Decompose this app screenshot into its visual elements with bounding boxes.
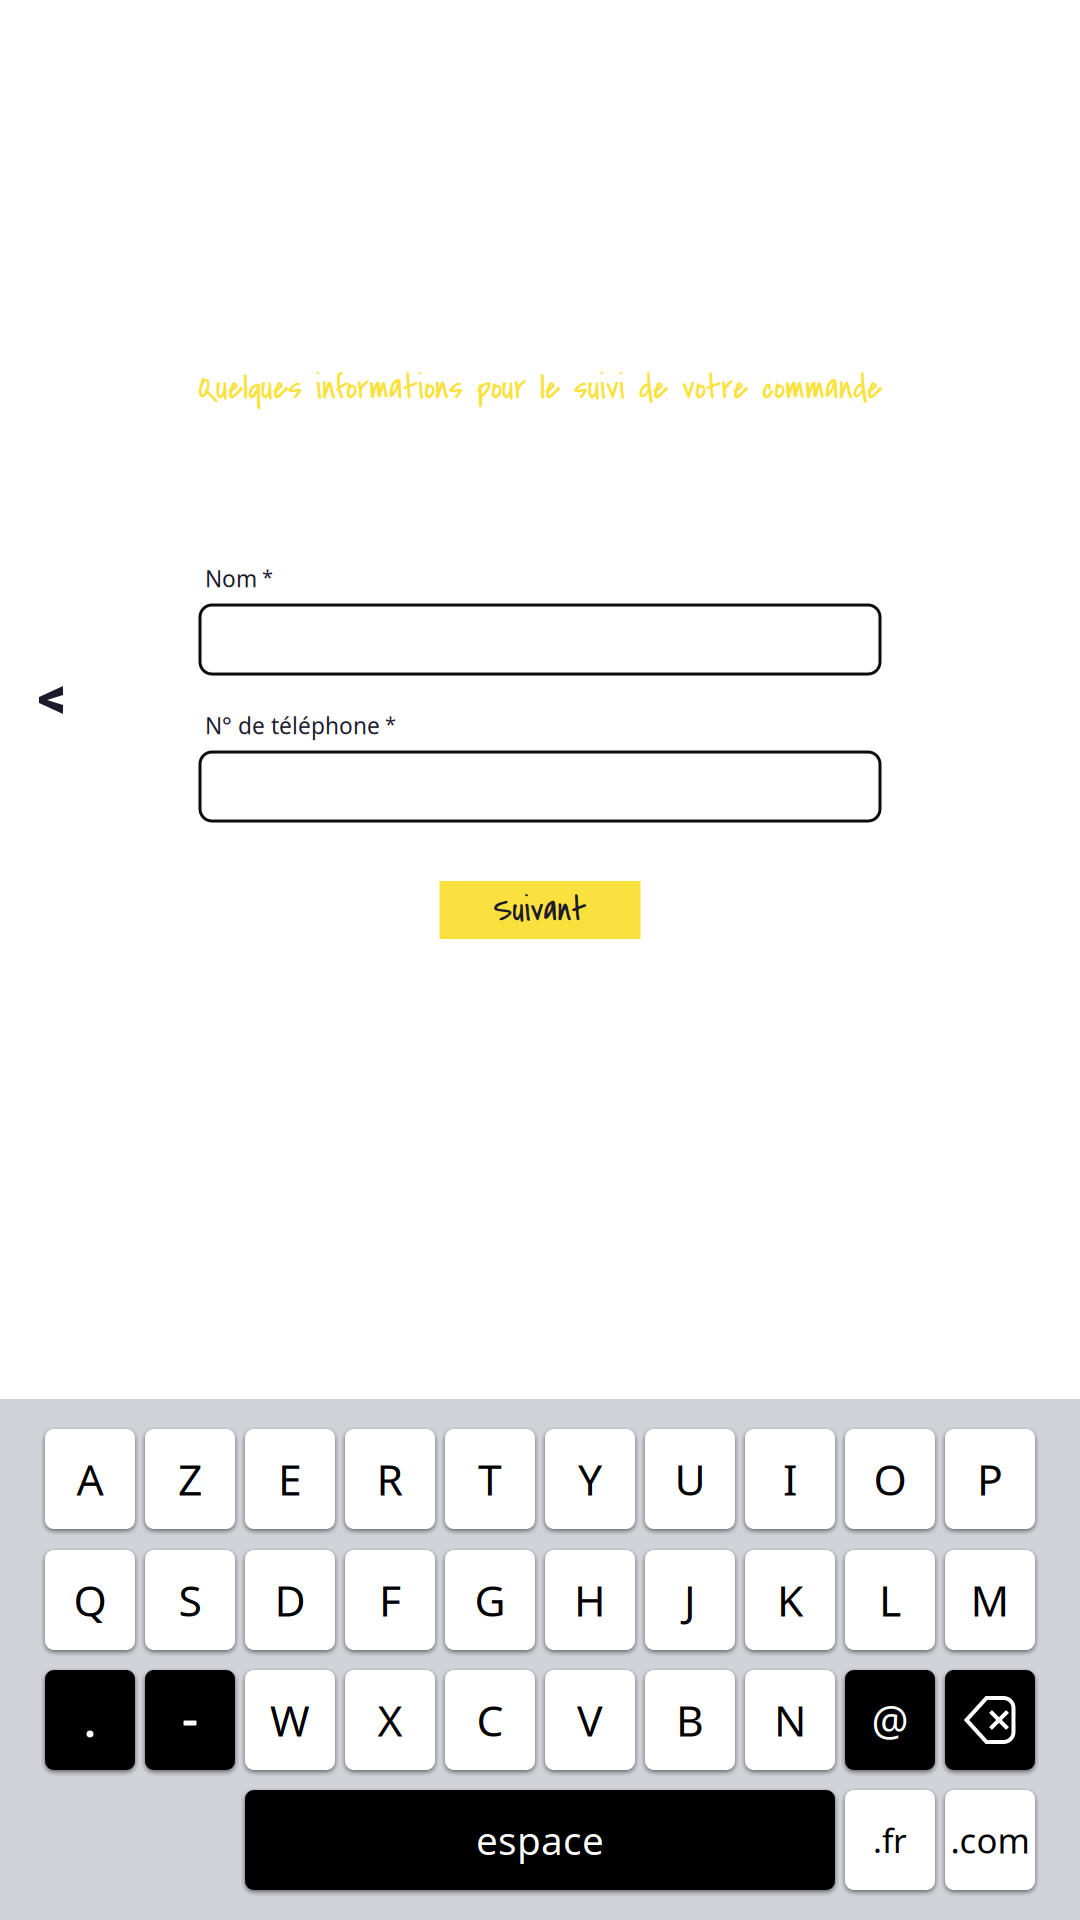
button[interactable]: .fr — [845, 1790, 935, 1890]
staticText: R — [376, 1450, 403, 1508]
button[interactable]: Q — [45, 1550, 135, 1650]
staticText: Y — [578, 1450, 602, 1508]
staticText: B — [676, 1691, 704, 1749]
button[interactable]: G — [445, 1550, 535, 1650]
button[interactable]: Retour — [1, 664, 101, 736]
staticText: N° de téléphone — [205, 710, 380, 741]
staticText: Nom — [205, 563, 257, 594]
staticText: X — [377, 1691, 402, 1749]
button[interactable]: S — [145, 1550, 235, 1650]
button[interactable]: .com — [945, 1790, 1035, 1890]
button[interactable]: P — [945, 1429, 1035, 1529]
button[interactable]: O — [845, 1429, 935, 1529]
staticText: S — [178, 1571, 201, 1629]
button[interactable]: B — [645, 1670, 735, 1770]
button[interactable]: T — [445, 1429, 535, 1529]
staticText: H — [574, 1571, 606, 1629]
button[interactable]: R — [345, 1429, 435, 1529]
button[interactable]: L — [845, 1550, 935, 1650]
button[interactable]: C — [445, 1670, 535, 1770]
button[interactable]: F — [345, 1550, 435, 1650]
staticText: @ — [871, 1692, 908, 1748]
button[interactable]: D — [245, 1550, 335, 1650]
button[interactable]: W — [245, 1670, 335, 1770]
staticText: * — [385, 710, 396, 737]
staticText: V — [577, 1691, 603, 1749]
staticText: .com — [950, 1816, 1029, 1864]
button[interactable]: Retour arrière — [945, 1670, 1035, 1770]
button[interactable]: M — [945, 1550, 1035, 1650]
button[interactable]: Suivant — [439, 881, 640, 939]
button[interactable]: U — [645, 1429, 735, 1529]
staticText: * — [262, 563, 273, 590]
button[interactable]: H — [545, 1550, 635, 1650]
staticText: J — [684, 1571, 696, 1629]
staticText: F — [379, 1571, 401, 1629]
staticText: Q — [73, 1571, 106, 1629]
button[interactable]: espace — [245, 1790, 835, 1890]
staticText: C — [476, 1691, 503, 1749]
button[interactable]: V — [545, 1670, 635, 1770]
button[interactable]: Tiret — [145, 1670, 235, 1770]
button[interactable]: A — [45, 1429, 135, 1529]
button[interactable]: X — [345, 1670, 435, 1770]
button[interactable]: Point — [45, 1670, 135, 1770]
button[interactable]: J — [645, 1550, 735, 1650]
staticText: I — [783, 1450, 797, 1508]
button[interactable]: I — [745, 1429, 835, 1529]
staticText: Suivant — [493, 887, 586, 933]
staticText: Quelques informations pour le suivi de v… — [198, 365, 882, 411]
button[interactable]: K — [745, 1550, 835, 1650]
button[interactable]: Y — [545, 1429, 635, 1529]
staticText: T — [478, 1450, 502, 1508]
button[interactable]: @ — [845, 1670, 935, 1770]
staticText: P — [977, 1450, 1003, 1508]
staticText: D — [274, 1571, 305, 1629]
button[interactable]: E — [245, 1429, 335, 1529]
staticText: L — [879, 1571, 901, 1629]
staticText: Z — [178, 1450, 202, 1508]
button[interactable]: N — [745, 1670, 835, 1770]
staticText: W — [270, 1691, 310, 1749]
staticText: K — [777, 1571, 803, 1629]
staticText: M — [970, 1571, 1009, 1629]
staticText: E — [278, 1450, 302, 1508]
staticText: O — [873, 1450, 906, 1508]
staticText: A — [76, 1450, 103, 1508]
staticText: .fr — [873, 1817, 907, 1863]
staticText: N — [774, 1691, 806, 1749]
staticText: G — [474, 1571, 505, 1629]
staticText: U — [674, 1450, 705, 1508]
button[interactable]: Z — [145, 1429, 235, 1529]
staticText: espace — [476, 1814, 604, 1866]
